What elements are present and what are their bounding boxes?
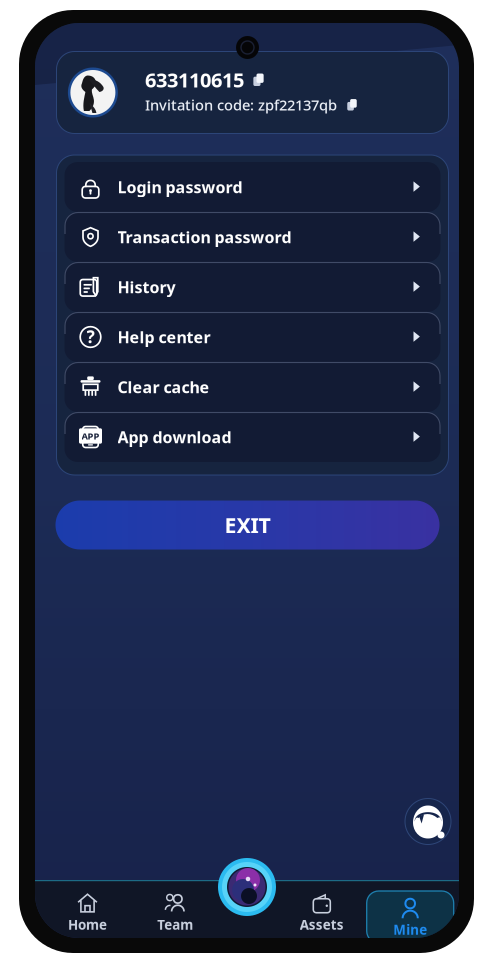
button[interactable]: Assets bbox=[278, 884, 366, 942]
staticText: ? bbox=[86, 325, 94, 348]
staticText: EXIT bbox=[224, 511, 270, 539]
staticText: Mine bbox=[393, 921, 427, 938]
button[interactable]: Copy account ID bbox=[252, 73, 265, 86]
staticText: Clear cache bbox=[117, 376, 209, 398]
button[interactable]: ? bbox=[64, 312, 440, 362]
staticText: Help center bbox=[117, 326, 210, 348]
button[interactable]: Transaction password bbox=[64, 212, 440, 262]
staticText: APP bbox=[81, 430, 99, 442]
button[interactable]: Customer service bbox=[405, 798, 451, 844]
staticText: 633110615 bbox=[145, 66, 244, 93]
staticText: Login password bbox=[117, 176, 242, 198]
staticText: Home bbox=[68, 916, 107, 933]
staticText: Invitation code: zpf22137qb bbox=[145, 95, 337, 115]
staticText: History bbox=[117, 276, 175, 298]
staticText: Team bbox=[157, 916, 193, 933]
button[interactable]: Login password bbox=[64, 162, 440, 212]
staticText: App download bbox=[117, 426, 231, 448]
button[interactable]: History bbox=[64, 262, 440, 312]
button[interactable]: Home bbox=[43, 884, 131, 942]
button[interactable]: Team bbox=[131, 884, 219, 942]
button[interactable]: APP bbox=[64, 412, 440, 462]
staticText: Assets bbox=[300, 916, 344, 933]
button[interactable]: Mine bbox=[367, 891, 454, 943]
button[interactable]: Copy invitation code bbox=[346, 99, 358, 111]
button[interactable]: EXIT bbox=[55, 500, 439, 549]
button[interactable]: Clear cache bbox=[64, 362, 440, 412]
staticText: Transaction password bbox=[117, 226, 291, 248]
